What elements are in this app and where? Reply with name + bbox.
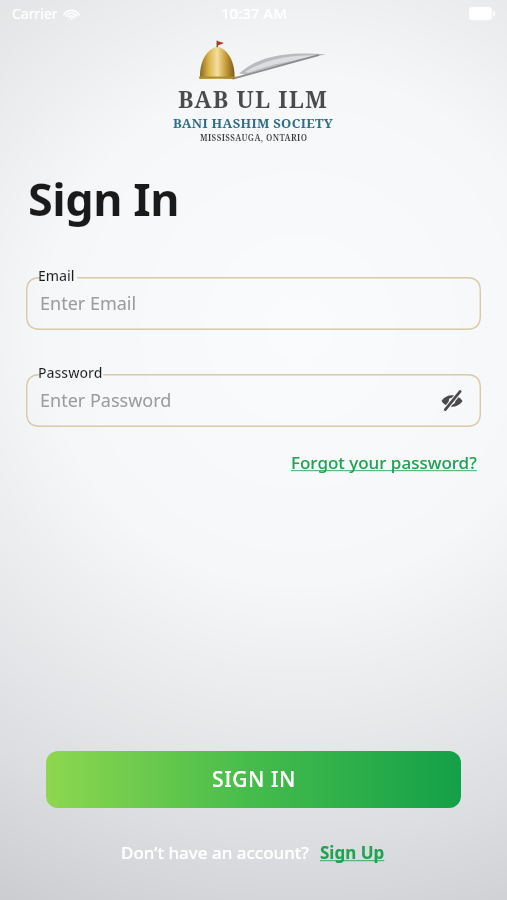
button[interactable]: Enter Email [26, 277, 481, 330]
staticText: Forgot your password? [291, 451, 477, 474]
staticText: BAB UL ILM [178, 83, 329, 114]
staticText: Email [38, 266, 75, 285]
button[interactable]: SIGN IN [46, 751, 461, 808]
button[interactable]: Show password [437, 386, 467, 416]
staticText: Carrier [12, 4, 58, 23]
button[interactable]: Enter Password [26, 374, 481, 427]
staticText: Enter Email [40, 291, 467, 316]
staticText: Sign Up [320, 841, 385, 864]
staticText: Sign In [28, 168, 179, 229]
staticText: MISSISSAUGA, ONTARIO [200, 132, 308, 143]
staticText: SIGN IN [212, 765, 296, 794]
button[interactable]: Forgot your password? [289, 447, 479, 478]
staticText: Don’t have an account? [121, 841, 309, 864]
staticText: 10:37 AM [221, 3, 287, 23]
staticText: Password [38, 363, 103, 382]
staticText: Enter Password [40, 388, 437, 413]
staticText: BANI HASHIM SOCIETY [173, 114, 334, 132]
button[interactable]: Sign Up [318, 838, 387, 867]
